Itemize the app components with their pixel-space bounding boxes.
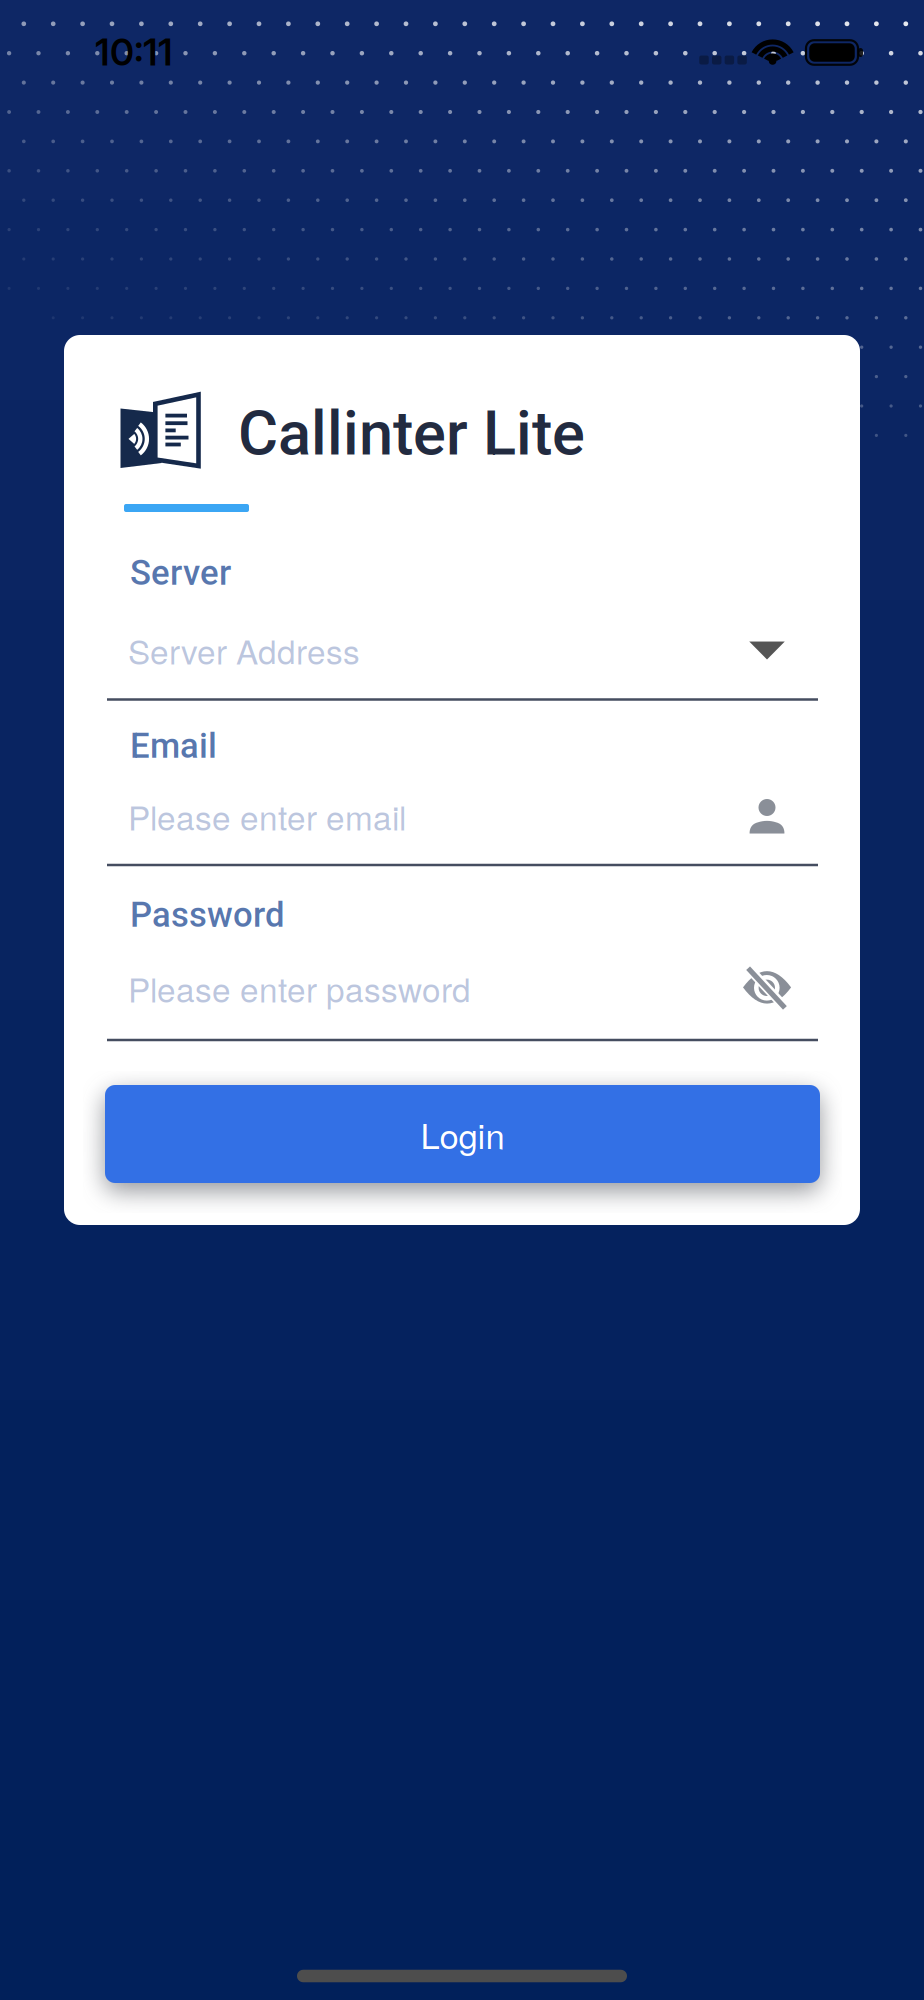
staticText: Callinter Lite xyxy=(238,398,585,469)
button[interactable]: Login xyxy=(105,1085,820,1183)
staticText: Email xyxy=(130,726,217,766)
staticText: Server Address xyxy=(128,626,360,674)
staticText: 10:11 xyxy=(95,29,173,75)
button[interactable]: Please enter password xyxy=(106,945,819,1031)
staticText: Server xyxy=(130,553,231,593)
staticText: Password xyxy=(130,895,285,935)
staticText: Please enter password xyxy=(128,964,471,1012)
staticText: Login xyxy=(420,1109,504,1159)
staticText: Please enter email xyxy=(128,792,406,840)
button[interactable]: Server Address xyxy=(106,607,819,693)
button[interactable]: Please enter email xyxy=(106,773,819,859)
